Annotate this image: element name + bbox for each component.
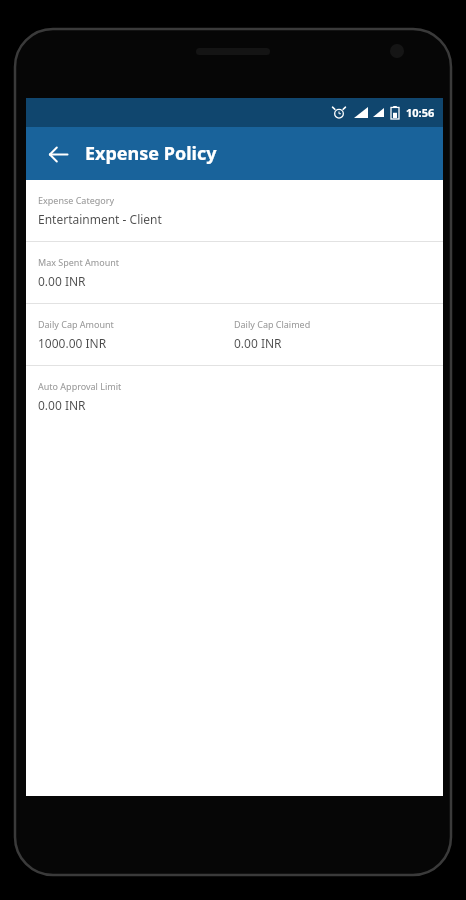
button[interactable]: Max Spent Amount (26, 242, 443, 303)
staticText: Entertainment - Client (38, 211, 162, 227)
staticText: 0.00 INR (38, 397, 86, 413)
staticText: Max Spent Amount (38, 256, 120, 268)
staticText: Daily Cap Claimed (234, 318, 311, 330)
staticText: 0.00 INR (38, 273, 86, 289)
button[interactable]: Expense Category (26, 180, 443, 241)
button[interactable]: Back (38, 134, 78, 174)
staticText: 1000.00 INR (38, 335, 107, 351)
staticText: 10:56 (406, 105, 435, 120)
staticText: 0.00 INR (234, 335, 282, 351)
staticText: Expense Policy (85, 141, 217, 166)
staticText: Expense Category (38, 194, 115, 206)
button[interactable]: Auto Approval Limit (26, 366, 443, 427)
button[interactable]: Daily Cap Amount (26, 304, 443, 365)
staticText: Auto Approval Limit (38, 380, 122, 392)
staticText: Daily Cap Amount (38, 318, 114, 330)
